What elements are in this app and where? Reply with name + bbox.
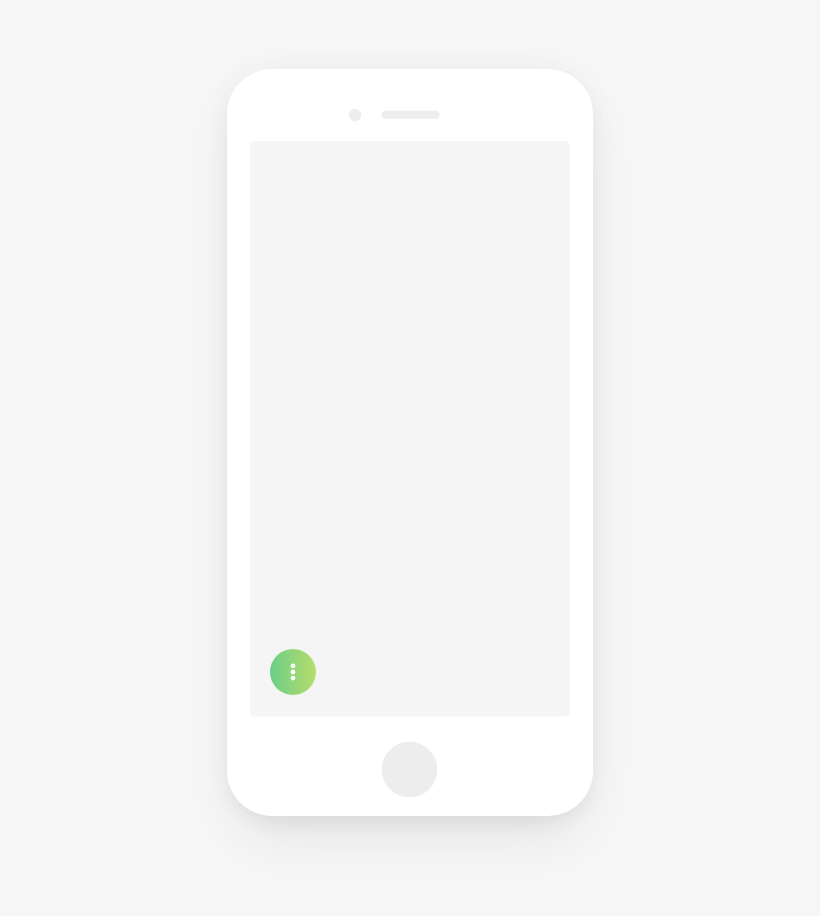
button[interactable]: More options <box>270 649 316 695</box>
